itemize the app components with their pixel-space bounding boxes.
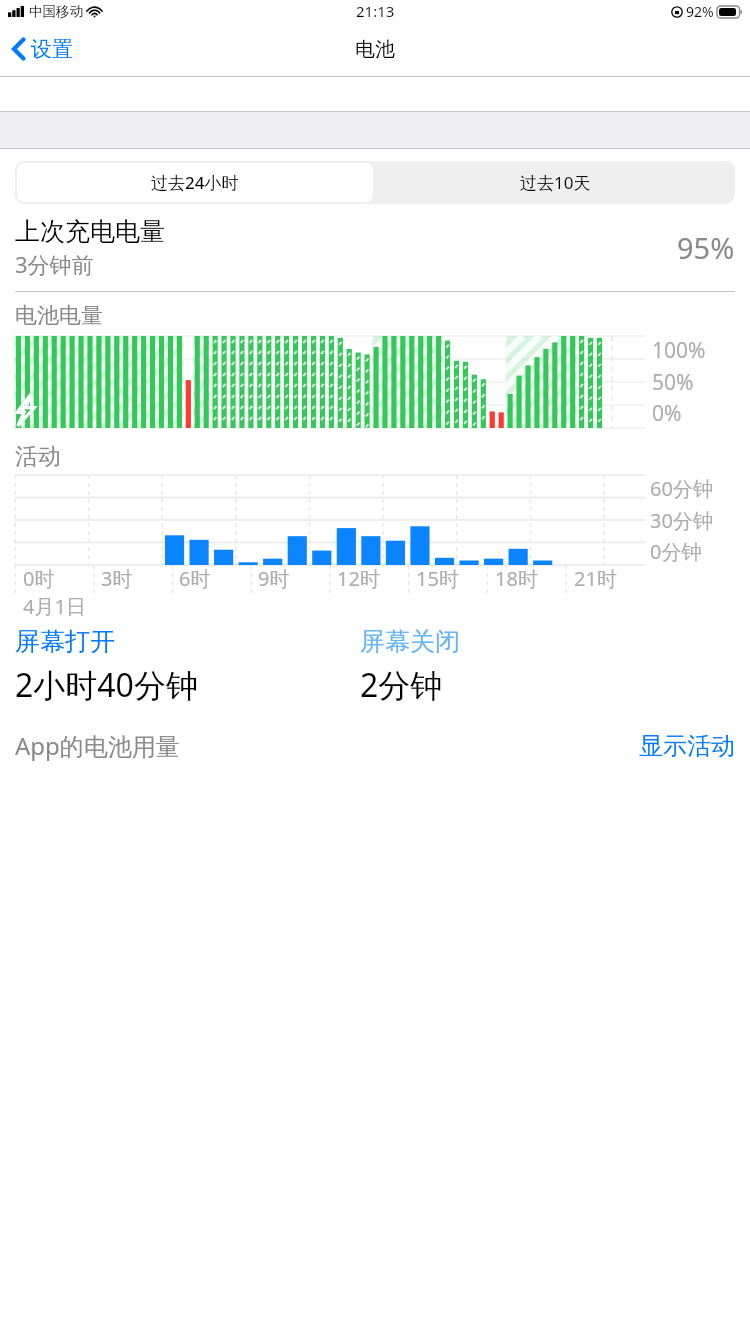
button[interactable]: [0, 76, 750, 111]
staticText: 21时: [574, 565, 617, 592]
staticText: 2分钟: [360, 663, 443, 707]
staticText: 9时: [258, 565, 290, 592]
staticText: 0分钟: [650, 538, 702, 565]
staticText: 50%: [652, 368, 694, 397]
staticText: 21:13: [356, 1, 395, 21]
staticText: 中国移动: [29, 3, 83, 20]
button[interactable]: 过去10天: [375, 161, 735, 204]
staticText: 屏幕打开: [15, 626, 115, 657]
staticText: 30分钟: [650, 507, 713, 534]
staticText: 60分钟: [650, 475, 713, 502]
staticText: 设置: [31, 36, 73, 62]
button[interactable]: 设置: [9, 32, 76, 66]
staticText: 4月1日: [23, 593, 86, 620]
staticText: 过去10天: [520, 171, 591, 194]
staticText: 显示活动: [639, 731, 735, 761]
staticText: 100%: [652, 336, 706, 365]
staticText: 15时: [416, 565, 459, 592]
staticText: 92%: [686, 2, 714, 21]
staticText: 屏幕关闭: [360, 626, 460, 657]
staticText: 上次充电电量: [15, 216, 165, 247]
button[interactable]: 过去24小时: [17, 163, 373, 202]
staticText: 0%: [652, 399, 682, 428]
staticText: 12时: [337, 565, 380, 592]
staticText: 18时: [495, 565, 538, 592]
button[interactable]: 显示活动: [639, 731, 735, 761]
staticText: 电池电量: [15, 302, 103, 330]
staticText: App的电池用量: [15, 729, 180, 762]
staticText: 活动: [15, 442, 61, 471]
staticText: 3时: [101, 565, 133, 592]
staticText: 3分钟前: [15, 249, 94, 279]
staticText: 电池: [355, 37, 395, 62]
staticText: 过去24小时: [151, 171, 239, 194]
staticText: 6时: [179, 565, 211, 592]
staticText: 2小时40分钟: [15, 663, 198, 707]
staticText: 0时: [23, 565, 55, 592]
staticText: 95%: [677, 228, 735, 267]
